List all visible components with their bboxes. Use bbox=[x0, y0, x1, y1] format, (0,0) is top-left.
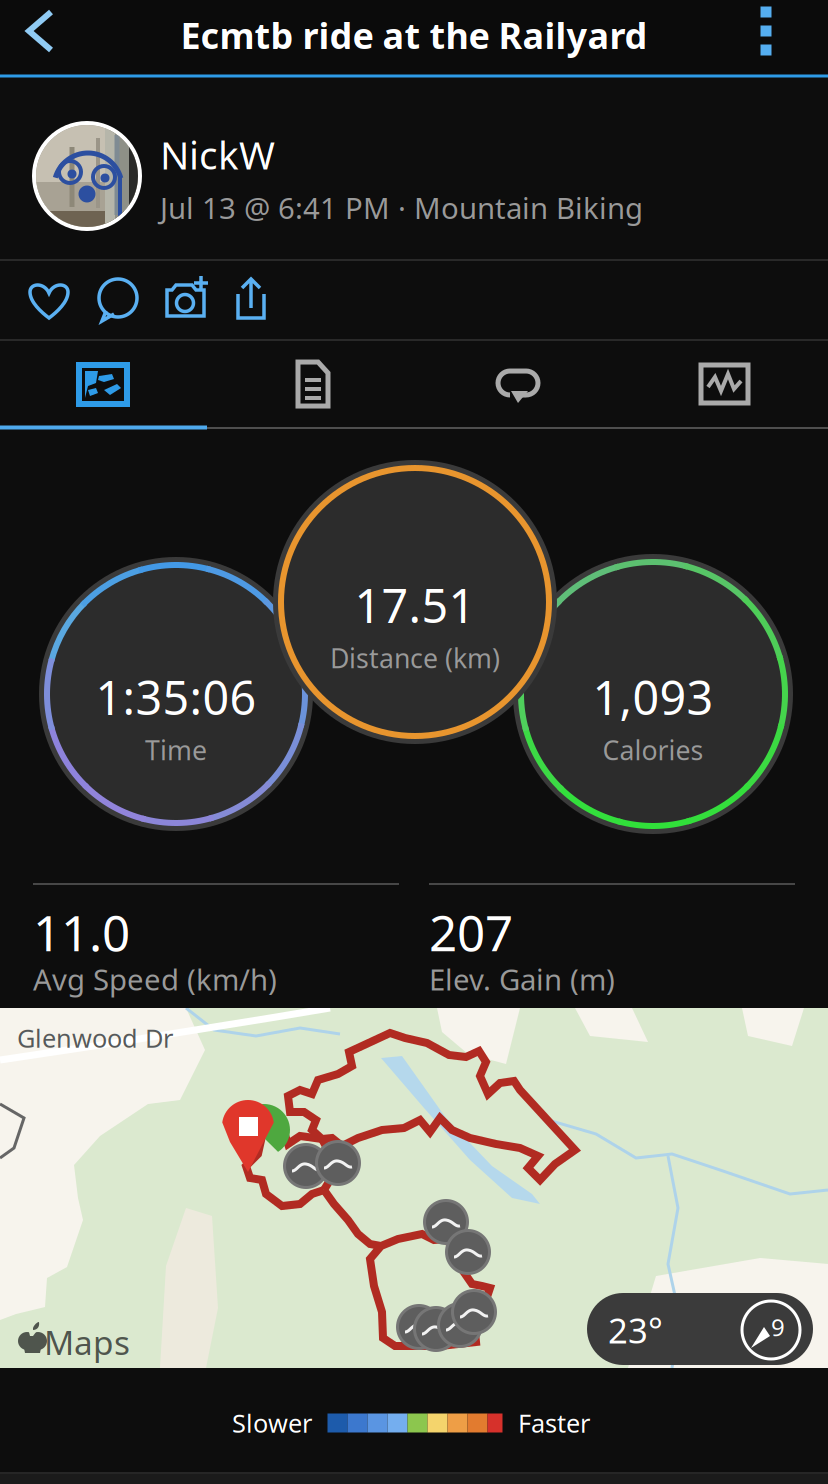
staticText: Jul 13 @ 6:41 PM · Mountain Biking bbox=[160, 188, 643, 227]
button[interactable]: Share bbox=[201, 260, 299, 340]
staticText: Slower bbox=[232, 1406, 312, 1440]
staticText: 1:35:06 bbox=[95, 666, 256, 728]
staticText: 9 bbox=[771, 1311, 785, 1343]
staticText: Elev. Gain (m) bbox=[429, 959, 615, 998]
staticText: Ecmtb ride at the Railyard bbox=[180, 11, 647, 59]
staticText: Distance (km) bbox=[330, 640, 500, 676]
staticText: Avg Speed (km/h) bbox=[33, 959, 277, 998]
staticText: Maps bbox=[44, 1320, 130, 1364]
staticText: Time bbox=[145, 732, 207, 768]
staticText: NickW bbox=[160, 129, 275, 180]
staticText: 23° bbox=[608, 1307, 663, 1353]
staticText: Faster bbox=[518, 1406, 590, 1440]
staticText: Glenwood Dr bbox=[17, 1021, 173, 1055]
staticText: 1,093 bbox=[592, 666, 713, 728]
button[interactable]: Charts bbox=[621, 340, 828, 428]
staticText: 17.51 bbox=[354, 574, 475, 636]
button[interactable]: Map bbox=[0, 340, 207, 428]
button[interactable]: Back bbox=[1, 0, 77, 62]
staticText: Calories bbox=[602, 732, 703, 768]
staticText: 11.0 bbox=[33, 899, 130, 965]
button[interactable]: Details bbox=[207, 340, 414, 428]
button[interactable]: Laps bbox=[414, 340, 621, 428]
button[interactable]: Like bbox=[0, 260, 98, 340]
button[interactable]: More options bbox=[728, 0, 804, 68]
button[interactable]: Comment bbox=[68, 260, 166, 340]
button[interactable]: Add photo bbox=[135, 260, 233, 340]
staticText: 207 bbox=[429, 899, 513, 965]
